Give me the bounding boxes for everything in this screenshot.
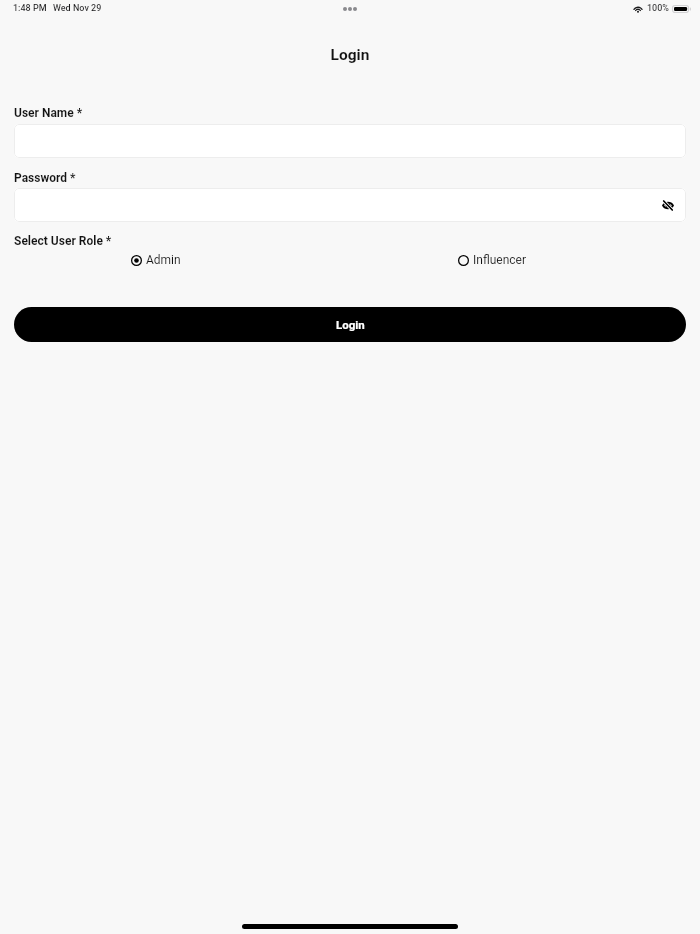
button[interactable]: Show password: [659, 196, 677, 214]
staticText: Admin: [146, 253, 181, 267]
staticText: Login: [336, 318, 365, 331]
staticText: 1:48 PM: [13, 3, 47, 14]
button[interactable]: Login: [14, 307, 686, 342]
button[interactable]: [14, 124, 686, 158]
button[interactable]: Show password: [14, 188, 686, 222]
staticText: Login: [0, 46, 700, 64]
staticText: 100%: [647, 3, 669, 14]
staticText: Password *: [14, 171, 76, 185]
staticText: Select User Role *: [14, 234, 112, 248]
button[interactable]: Influencer: [458, 253, 527, 267]
staticText: Wed Nov 29: [53, 3, 102, 14]
button[interactable]: Admin: [131, 253, 181, 267]
staticText: Influencer: [473, 253, 527, 267]
staticText: User Name *: [14, 106, 83, 120]
